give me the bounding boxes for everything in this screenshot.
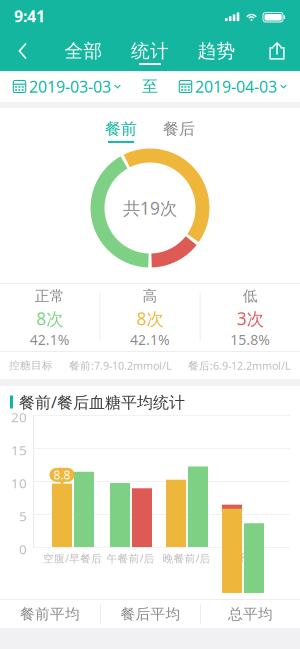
staticText: 高 — [142, 287, 157, 305]
button[interactable]: Back — [6, 32, 40, 70]
staticText: 餐后 — [163, 119, 195, 139]
staticText: 控糖目标 — [9, 359, 53, 372]
staticText: 9:41 — [14, 5, 45, 27]
staticText: 总平均 — [228, 605, 273, 623]
staticText: 15 — [11, 441, 27, 459]
staticText: 0 — [19, 540, 27, 558]
button[interactable]: 统计 — [127, 32, 173, 70]
staticText: 晚餐前/后 — [162, 551, 210, 565]
staticText: 正常 — [35, 287, 65, 305]
staticText: 至 — [142, 76, 158, 97]
staticText: 15.8% — [230, 330, 270, 349]
button[interactable]: 全部 — [60, 32, 106, 70]
staticText: 统计 — [131, 39, 169, 63]
staticText: 42.1% — [130, 330, 170, 349]
staticText: 餐后平均 — [120, 605, 180, 623]
staticText: 总平均 — [226, 551, 259, 564]
button[interactable]: 2019-04-03 — [174, 71, 292, 102]
staticText: 餐前/餐后血糖平均统计 — [19, 391, 185, 413]
staticText: 餐前平均 — [20, 605, 80, 623]
button[interactable]: 趋势 — [193, 32, 239, 70]
staticText: 全部 — [64, 39, 102, 63]
staticText: 2019-03-03 — [29, 76, 111, 97]
staticText: 10 — [11, 474, 27, 492]
staticText: 8.8 — [53, 467, 70, 483]
staticText: 午餐前/后 — [106, 551, 154, 565]
button[interactable]: 2019-03-03 — [8, 71, 126, 102]
button[interactable]: 餐前平均 — [0, 600, 100, 628]
staticText: 餐前:7.9-10.2mmol/L — [69, 358, 172, 373]
staticText: 3次 — [237, 307, 264, 330]
staticText: 8次 — [136, 307, 163, 330]
staticText: 5 — [19, 507, 27, 525]
staticText: 低 — [243, 287, 258, 305]
button[interactable]: Share — [260, 32, 294, 70]
button[interactable]: 总平均 — [201, 600, 300, 628]
staticText: 42.1% — [30, 330, 70, 349]
staticText: 餐后:6.9-12.2mmol/L — [188, 358, 291, 373]
staticText: 趋势 — [197, 39, 235, 63]
button[interactable]: 餐后 — [159, 116, 199, 142]
staticText: 共19次 — [123, 196, 177, 220]
staticText: 2019-04-03 — [195, 76, 277, 97]
staticText: 空腹/早餐后 — [43, 551, 102, 565]
staticText: 餐前 — [105, 119, 137, 139]
staticText: 8次 — [36, 307, 63, 330]
button[interactable]: 餐后平均 — [101, 600, 200, 628]
button[interactable]: 餐前 — [101, 116, 141, 142]
staticText: 20 — [11, 408, 27, 426]
